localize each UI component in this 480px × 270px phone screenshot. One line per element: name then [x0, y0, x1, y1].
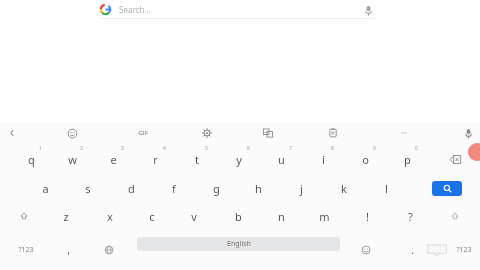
button[interactable]: English — [137, 237, 340, 251]
button[interactable]: Clipboard — [320, 122, 346, 144]
button[interactable]: j — [282, 174, 320, 202]
staticText: 5 — [205, 145, 208, 152]
staticText: r — [153, 152, 158, 167]
button[interactable]: Shift — [436, 202, 474, 230]
staticText: 0 — [415, 145, 418, 152]
button[interactable]: w — [53, 144, 91, 174]
button[interactable]: c — [133, 202, 171, 230]
button[interactable]: Settings — [194, 122, 220, 144]
button[interactable]: r — [136, 144, 174, 174]
button[interactable]: s — [69, 174, 107, 202]
button[interactable]: Search — [428, 174, 466, 202]
button[interactable]: u — [262, 144, 300, 174]
button[interactable]: Back — [0, 122, 25, 144]
staticText: 4 — [163, 145, 166, 152]
button[interactable]: Emoji — [352, 230, 380, 270]
staticText: u — [278, 152, 285, 167]
button[interactable]: q — [12, 144, 50, 174]
button[interactable]: d — [112, 174, 150, 202]
button[interactable]: f — [155, 174, 193, 202]
button[interactable]: p — [388, 144, 426, 174]
staticText: m — [319, 209, 330, 224]
button[interactable]: Voice search — [361, 3, 375, 17]
staticText: s — [85, 181, 91, 196]
button[interactable]: x — [91, 202, 129, 230]
staticText: Search... — [119, 4, 151, 15]
button[interactable]: n — [262, 202, 300, 230]
button[interactable]: e — [94, 144, 132, 174]
staticText: b — [235, 209, 242, 224]
button[interactable]: Comma — [52, 230, 84, 270]
staticText: z — [63, 209, 69, 224]
staticText: 6 — [247, 145, 250, 152]
button[interactable]: GIF — [130, 122, 156, 144]
button[interactable]: l — [367, 174, 405, 202]
button[interactable]: Hide keyboard — [424, 230, 450, 270]
staticText: ?123 — [18, 245, 34, 255]
staticText: . — [411, 243, 414, 257]
staticText: 1 — [39, 145, 42, 152]
button[interactable]: h — [239, 174, 277, 202]
staticText: l — [385, 181, 388, 196]
staticText: d — [128, 181, 135, 196]
staticText: c — [149, 209, 155, 224]
button[interactable]: o — [346, 144, 384, 174]
button[interactable]: v — [175, 202, 213, 230]
button[interactable]: ? — [391, 202, 429, 230]
button[interactable]: Period — [400, 230, 424, 270]
button[interactable]: b — [219, 202, 257, 230]
staticText: 8 — [331, 145, 334, 152]
button[interactable]: k — [325, 174, 363, 202]
staticText: k — [341, 181, 347, 196]
staticText: w — [68, 152, 77, 167]
staticText: , — [67, 243, 70, 257]
button[interactable]: t — [178, 144, 216, 174]
button[interactable]: Shift — [5, 202, 43, 230]
button[interactable]: g — [197, 174, 235, 202]
staticText: 7 — [289, 145, 292, 152]
staticText: q — [28, 152, 35, 167]
button[interactable]: a — [26, 174, 64, 202]
staticText: v — [191, 209, 197, 224]
staticText: t — [195, 152, 199, 167]
button[interactable]: Translate — [255, 122, 281, 144]
button[interactable]: y — [220, 144, 258, 174]
staticText: a — [42, 181, 49, 196]
button[interactable]: More options — [391, 122, 417, 144]
button[interactable]: z — [47, 202, 85, 230]
staticText: ?123 — [456, 245, 472, 255]
staticText: ? — [408, 209, 413, 224]
staticText: n — [278, 209, 285, 224]
button[interactable]: i — [304, 144, 342, 174]
button[interactable]: ?123 — [6, 230, 46, 270]
button[interactable]: ?123 — [448, 230, 480, 270]
staticText: g — [213, 181, 220, 196]
button[interactable]: Search... — [100, 1, 375, 18]
staticText: o — [362, 152, 369, 167]
staticText: y — [236, 152, 242, 167]
staticText: 2 — [80, 145, 83, 152]
staticText: x — [107, 209, 113, 224]
button[interactable]: m — [305, 202, 343, 230]
staticText: ! — [366, 209, 369, 224]
staticText: English — [227, 239, 251, 249]
staticText: j — [300, 181, 303, 196]
button[interactable]: Stickers — [59, 122, 85, 144]
staticText: 3 — [121, 145, 124, 152]
button[interactable]: Voice input — [455, 122, 480, 144]
button[interactable]: Backspace — [436, 144, 474, 174]
staticText: f — [172, 181, 176, 196]
staticText: p — [404, 152, 411, 167]
staticText: i — [322, 152, 325, 167]
staticText: h — [255, 181, 262, 196]
staticText: 9 — [373, 145, 376, 152]
staticText: e — [110, 152, 117, 167]
staticText: GIF — [138, 129, 148, 137]
button[interactable]: Change language — [94, 230, 124, 270]
button[interactable]: ! — [348, 202, 386, 230]
